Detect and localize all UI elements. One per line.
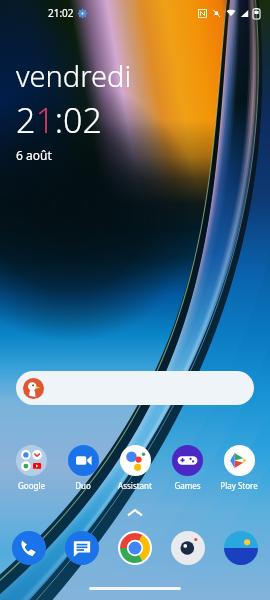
staticText: vendredi — [16, 56, 132, 95]
staticText: 6 août — [16, 147, 52, 163]
staticText: Assistant — [118, 480, 152, 491]
button[interactable]: Play Store — [214, 445, 264, 491]
staticText: Google — [18, 480, 45, 491]
button[interactable]: Assistant — [110, 445, 160, 491]
staticText: 21:02 — [16, 97, 102, 143]
staticText: Duo — [75, 480, 91, 491]
button[interactable]: Phone — [12, 531, 46, 565]
button[interactable]: Duo — [58, 445, 108, 491]
button[interactable]: Open app drawer — [128, 509, 142, 517]
button[interactable] — [16, 371, 254, 405]
button[interactable]: Photos — [224, 531, 258, 565]
staticText: Games — [174, 480, 201, 491]
staticText: 21:02 — [48, 6, 74, 20]
button[interactable]: Chrome — [118, 531, 152, 565]
button[interactable]: Google — [6, 445, 56, 491]
staticText: Play Store — [220, 480, 258, 491]
button[interactable]: Games — [162, 445, 212, 491]
button[interactable]: Messages — [65, 531, 99, 565]
button[interactable]: Camera — [171, 531, 205, 565]
